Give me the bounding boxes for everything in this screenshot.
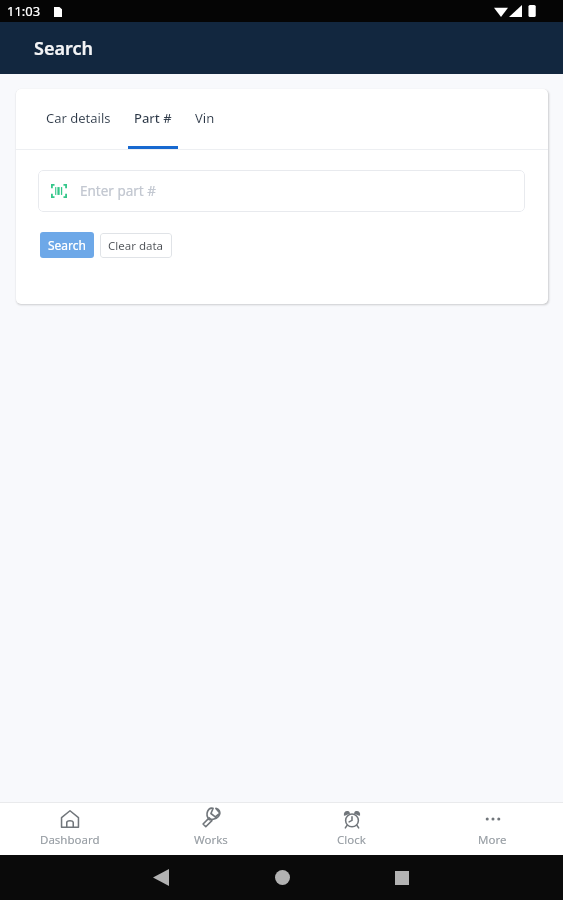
other: Back (153, 869, 169, 886)
staticText: Works (194, 832, 228, 848)
button[interactable]: Vin (189, 109, 221, 149)
button[interactable]: Part # (128, 109, 178, 149)
staticText: Search (48, 237, 86, 253)
button[interactable]: Clock (281, 803, 422, 855)
button[interactable]: Works (140, 803, 281, 855)
staticText: 11:03 (7, 2, 41, 20)
staticText: Search (34, 36, 93, 61)
staticText: Enter part # (80, 182, 156, 200)
staticText: Car details (46, 109, 111, 127)
button[interactable]: Dashboard (0, 803, 140, 855)
button[interactable]: Search (40, 232, 94, 258)
button[interactable]: Recents (374, 855, 430, 900)
button[interactable]: Scan barcode (38, 170, 525, 212)
staticText: Clock (337, 832, 366, 848)
other: Scan barcode (51, 184, 67, 198)
other: Home (275, 870, 290, 885)
staticText: More (478, 832, 507, 848)
staticText: Dashboard (40, 832, 100, 848)
button[interactable]: Clear data (100, 233, 172, 258)
staticText: Part # (134, 109, 172, 127)
button[interactable]: Car details (40, 109, 117, 149)
button[interactable]: More (422, 803, 563, 855)
staticText: Clear data (108, 238, 164, 254)
button[interactable]: Home (254, 855, 310, 900)
staticText: Vin (195, 109, 215, 127)
button[interactable]: Back (133, 855, 189, 900)
